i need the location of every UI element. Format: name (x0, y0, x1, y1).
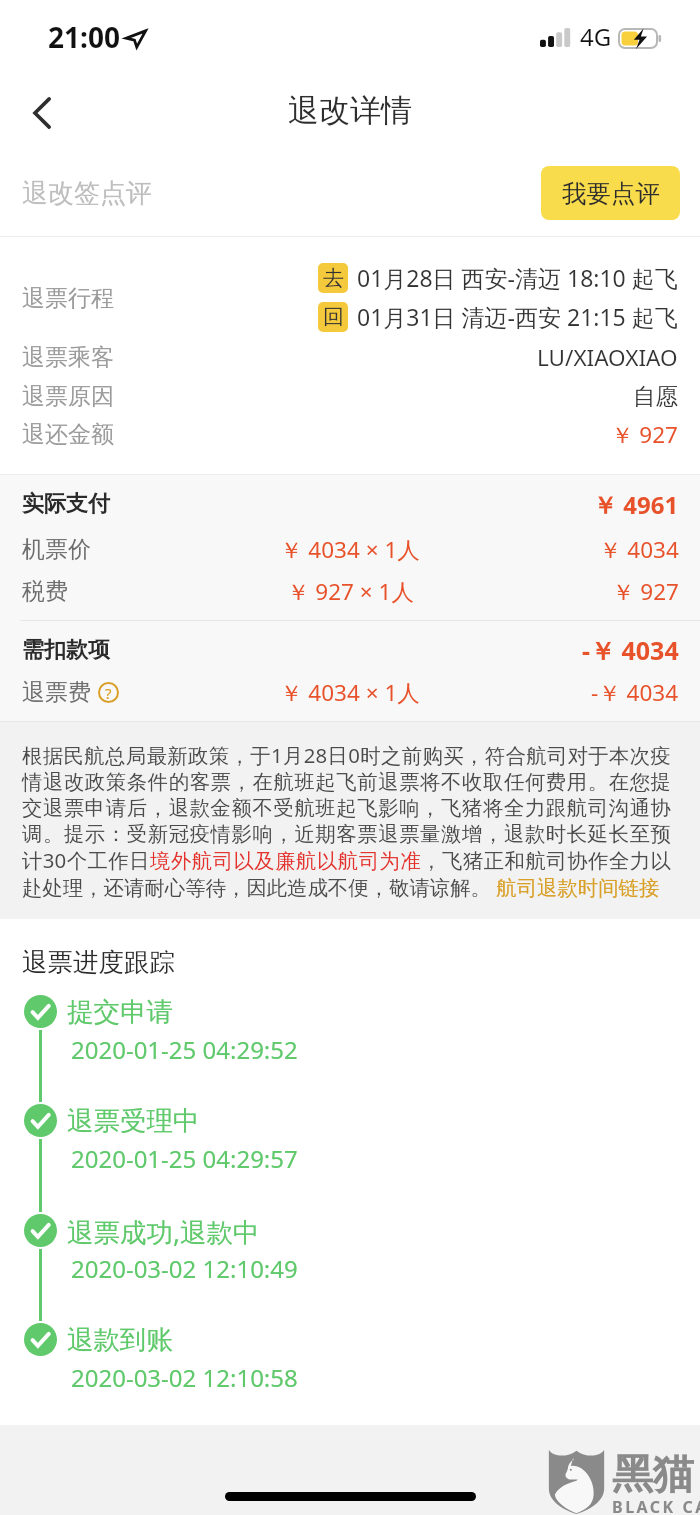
button[interactable]: 我要点评 (541, 166, 680, 220)
staticText: ￥ 927 × 1人 (287, 576, 414, 607)
staticText: ￥ 927 (612, 576, 679, 607)
staticText: 退票成功,退款中 (67, 1214, 260, 1250)
staticText: 退票进度跟踪 (22, 946, 175, 978)
staticText: ￥ 4961 (593, 488, 679, 521)
staticText: 回 (323, 304, 344, 330)
staticText: 01月31日 清迈-西安 21:15 起飞 (357, 301, 678, 332)
staticText: 自愿 (633, 382, 678, 410)
staticText: 退还金额 (22, 420, 114, 449)
staticText: 实际支付 (22, 490, 110, 518)
staticText: 我要点评 (562, 178, 660, 209)
staticText: 退票乘客 (22, 343, 114, 372)
staticText: 去 (323, 265, 344, 291)
staticText: 2020-03-02 12:10:58 (71, 1361, 298, 1394)
staticText: 退款到账 (67, 1323, 173, 1356)
staticText: ￥ 4034 (599, 534, 679, 565)
staticText: 退改详情 (288, 91, 412, 130)
staticText: ￥ 927 (611, 419, 678, 450)
staticText: 根据民航总局最新政策，于1月28日0时之前购买，符合航司对于本次疫情退改政策条件… (22, 741, 671, 901)
staticText: 机票价 (22, 535, 91, 564)
staticText: 黑猫 (612, 1449, 694, 1501)
staticText: 退改签点评 (22, 177, 152, 210)
staticText: ? (105, 683, 112, 703)
staticText: ￥ 4034 × 1人 (280, 677, 420, 708)
staticText: -￥ 4034 (582, 633, 679, 667)
staticText: 2020-03-02 12:10:49 (71, 1252, 298, 1285)
staticText: 21:00 (48, 18, 120, 56)
button[interactable]: Back (0, 76, 72, 150)
staticText: 退票费 (22, 678, 91, 707)
staticText: 4G (580, 20, 612, 53)
staticText: LU/XIAOXIAO (537, 342, 678, 373)
staticText: -￥ 4034 (591, 677, 679, 708)
staticText: 退票行程 (22, 284, 114, 313)
staticText: 退票原因 (22, 382, 114, 411)
staticText: BLACK CAT (612, 1496, 700, 1515)
staticText: 需扣款项 (22, 636, 110, 664)
staticText: 提交申请 (67, 995, 173, 1028)
staticText: 2020-01-25 04:29:57 (71, 1142, 298, 1175)
staticText: ￥ 4034 × 1人 (280, 534, 420, 565)
staticText: 退票受理中 (67, 1104, 200, 1137)
staticText: 01月28日 西安-清迈 18:10 起飞 (357, 262, 678, 293)
staticText: 2020-01-25 04:29:52 (71, 1033, 298, 1066)
staticText: 税费 (22, 577, 68, 606)
button[interactable]: Help (98, 682, 119, 703)
